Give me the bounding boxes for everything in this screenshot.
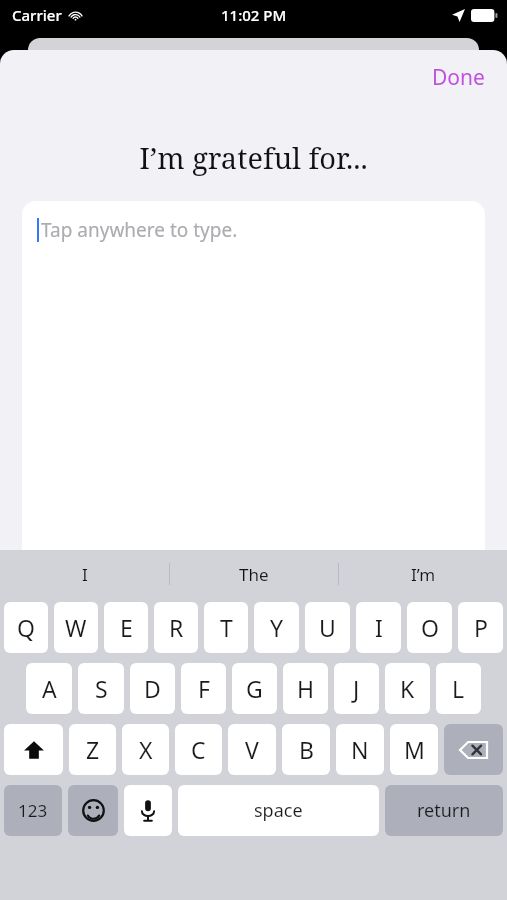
staticText: T [220, 612, 233, 643]
staticText: S [95, 673, 108, 704]
staticText: I’m grateful for... [139, 138, 368, 177]
staticText: D [144, 673, 161, 704]
staticText: Done [432, 63, 485, 92]
staticText: The [239, 563, 269, 586]
button[interactable]: E [104, 602, 148, 653]
button[interactable]: Shift [4, 724, 63, 775]
button[interactable]: space [178, 785, 379, 836]
button[interactable]: G [232, 663, 277, 714]
button[interactable]: B [282, 724, 330, 775]
staticText: L [452, 673, 465, 704]
staticText: R [169, 612, 184, 643]
staticText: B [299, 734, 314, 765]
button[interactable]: K [385, 663, 430, 714]
button[interactable]: F [181, 663, 226, 714]
button[interactable]: R [154, 602, 198, 653]
staticText: A [42, 673, 57, 704]
button[interactable]: Z [69, 724, 116, 775]
staticText: Y [270, 612, 284, 643]
button[interactable]: Backspace [444, 724, 503, 775]
staticText: H [297, 673, 315, 704]
button[interactable]: Dictation [124, 785, 172, 836]
button[interactable]: M [390, 724, 438, 775]
button[interactable]: return [385, 785, 503, 836]
staticText: G [246, 673, 263, 704]
staticText: V [245, 734, 259, 765]
staticText: K [400, 673, 415, 704]
staticText: O [421, 612, 439, 643]
button[interactable]: Q [4, 602, 48, 653]
button[interactable]: L [436, 663, 481, 714]
button[interactable]: U [305, 602, 350, 653]
staticText: 11:02 PM [221, 5, 287, 25]
staticText: return [417, 798, 471, 823]
staticText: N [351, 734, 369, 765]
staticText: F [198, 673, 210, 704]
staticText: Tap anywhere to type. [41, 217, 238, 243]
button[interactable]: P [458, 602, 503, 653]
staticText: Z [86, 734, 100, 765]
button[interactable]: The [170, 550, 338, 598]
button[interactable]: A [26, 663, 72, 714]
staticText: C [191, 734, 206, 765]
staticText: M [404, 734, 425, 765]
staticText: I [375, 612, 383, 643]
button[interactable]: Tap anywhere to type. [22, 201, 485, 550]
staticText: E [120, 612, 133, 643]
staticText: I [82, 563, 88, 586]
button[interactable]: I [356, 602, 401, 653]
button[interactable]: X [122, 724, 169, 775]
button[interactable]: Y [254, 602, 299, 653]
staticText: X [139, 734, 153, 765]
staticText: I’m [411, 563, 436, 586]
staticText: J [353, 673, 360, 704]
button[interactable]: I [0, 550, 169, 598]
button[interactable]: Emoji [68, 785, 118, 836]
button[interactable]: T [204, 602, 248, 653]
button[interactable]: Done [424, 59, 493, 96]
button[interactable]: I’m [339, 550, 507, 598]
button[interactable]: S [78, 663, 124, 714]
button[interactable]: D [130, 663, 175, 714]
button[interactable]: 123 [4, 785, 62, 836]
staticText: P [474, 612, 488, 643]
staticText: space [254, 798, 303, 823]
button[interactable]: J [334, 663, 379, 714]
staticText: Carrier [12, 5, 62, 25]
staticText: U [319, 612, 336, 643]
button[interactable]: V [228, 724, 276, 775]
staticText: W [65, 612, 87, 643]
staticText: Q [17, 612, 35, 643]
button[interactable]: W [54, 602, 98, 653]
button[interactable]: O [407, 602, 452, 653]
button[interactable]: N [336, 724, 384, 775]
staticText: 123 [18, 799, 48, 822]
button[interactable]: H [283, 663, 328, 714]
button[interactable]: C [175, 724, 222, 775]
